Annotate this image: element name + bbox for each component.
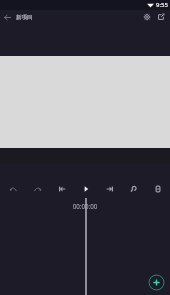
button[interactable]: Fullscreen <box>146 179 170 199</box>
staticText: 00:00:00 <box>0 202 170 210</box>
button[interactable]: Skip to start <box>50 179 74 199</box>
button[interactable]: Settings <box>140 10 154 24</box>
button[interactable]: Play <box>74 179 98 199</box>
button[interactable]: Skip to end <box>98 179 122 199</box>
button[interactable]: Redo <box>25 179 50 199</box>
button[interactable]: Undo <box>0 179 25 199</box>
staticText: 9:55 <box>156 1 168 9</box>
button[interactable]: Back <box>1 11 14 24</box>
button[interactable]: Add <box>148 274 165 291</box>
button[interactable]: Export <box>154 10 168 24</box>
staticText: 新项目 <box>16 14 33 21</box>
button[interactable]: Loop <box>122 179 146 199</box>
